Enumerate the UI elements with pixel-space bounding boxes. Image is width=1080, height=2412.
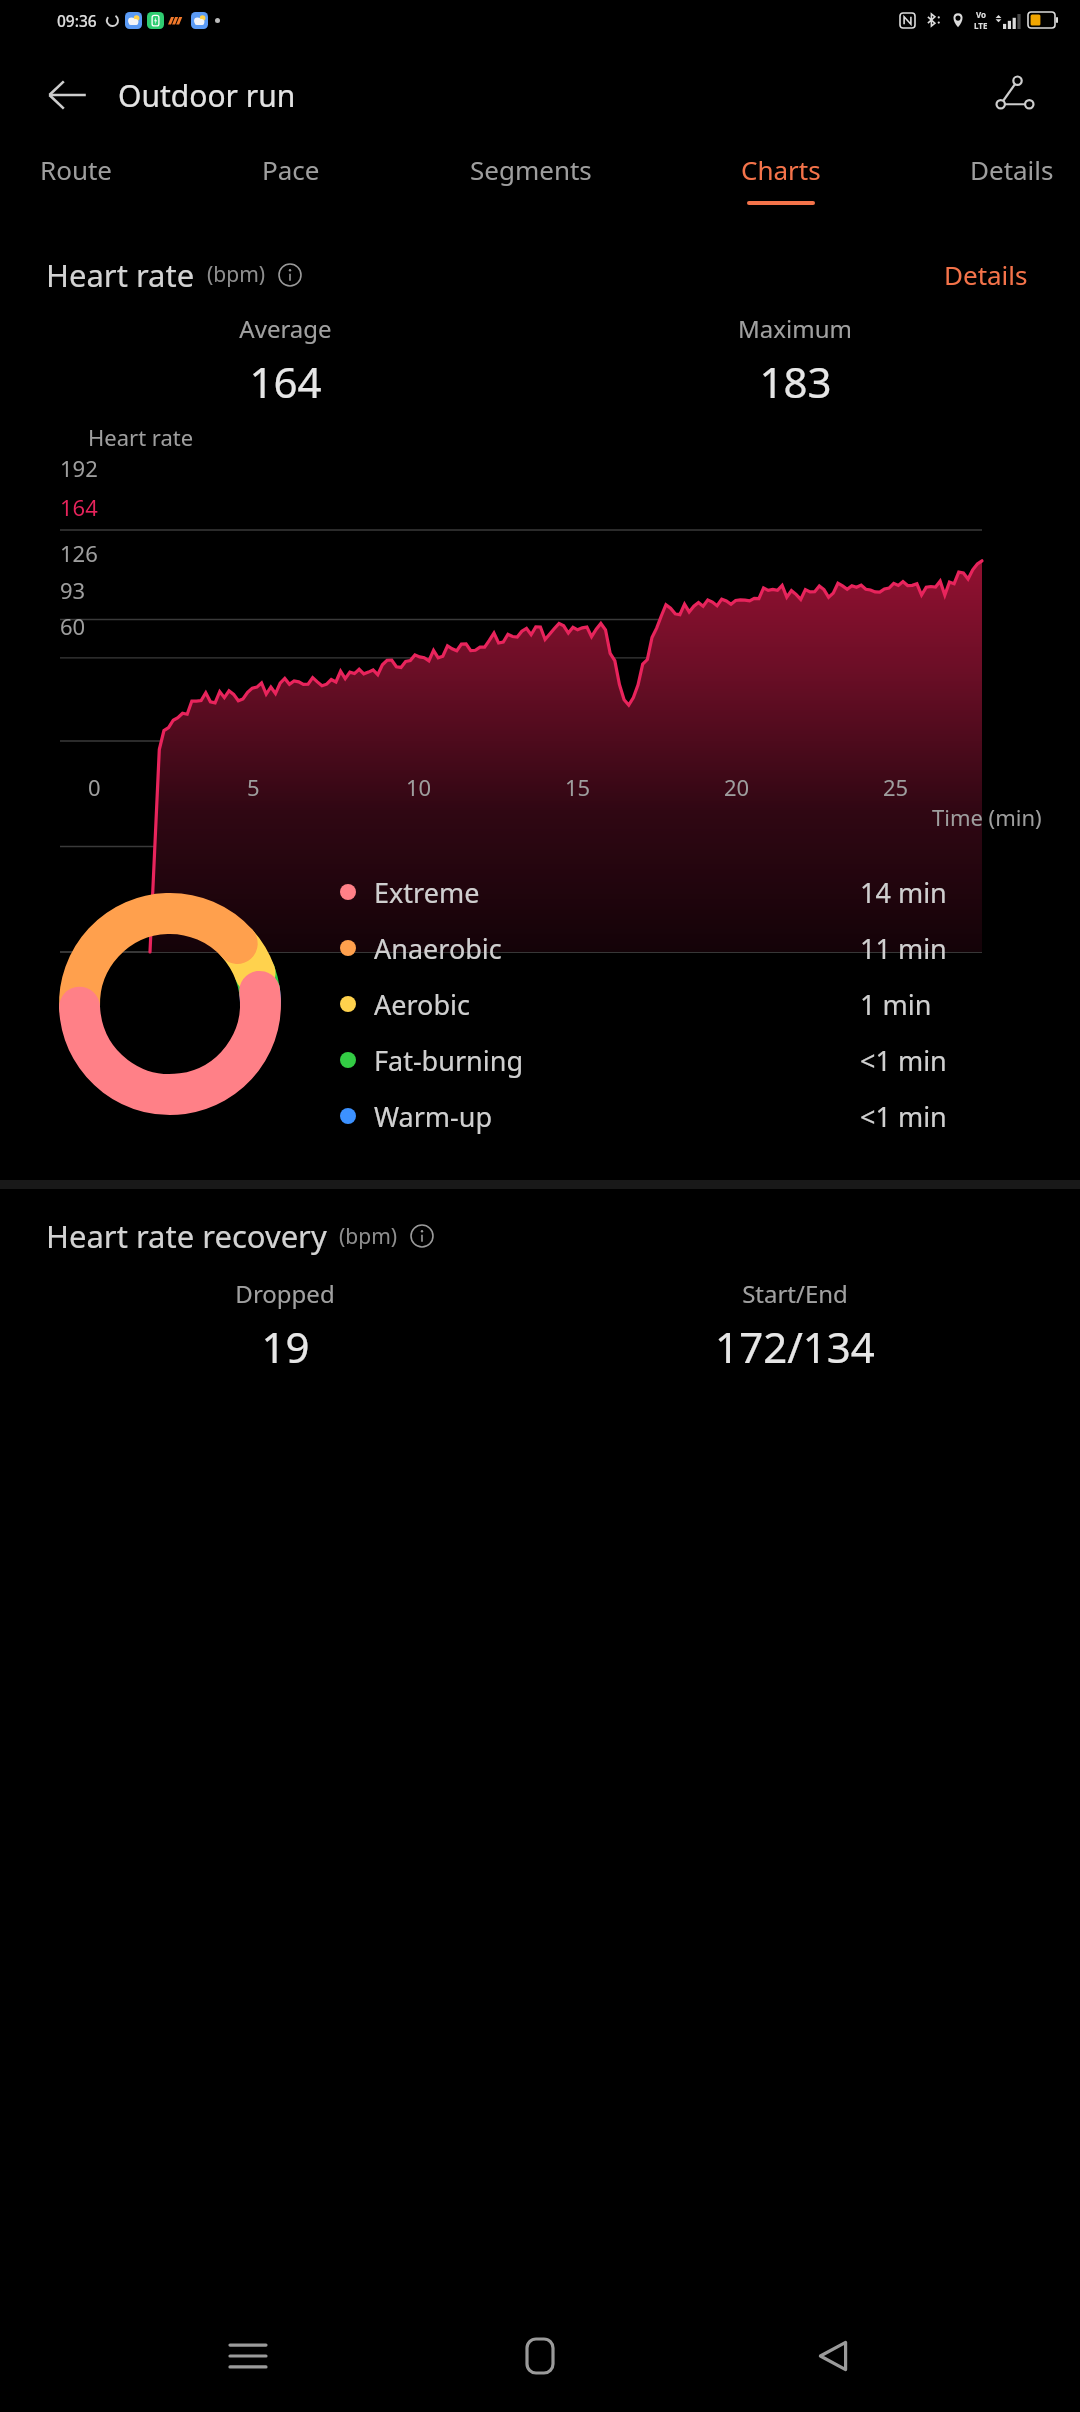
staticText: Maximum xyxy=(738,312,852,345)
staticText: 15 xyxy=(565,772,591,802)
button[interactable]: Details xyxy=(966,150,1058,207)
button[interactable]: Aerobic xyxy=(340,976,1040,1032)
staticText: (bpm) xyxy=(207,260,266,289)
button[interactable]: Share xyxy=(980,60,1050,130)
staticText: Time (min) xyxy=(932,802,1042,832)
staticText: 20 xyxy=(724,772,750,802)
staticText: Route xyxy=(40,152,113,187)
button[interactable]: Info xyxy=(276,261,304,289)
staticText: Heart rate recovery xyxy=(46,1215,327,1257)
staticText: 0 xyxy=(88,772,101,802)
staticText: LTE xyxy=(974,20,988,31)
button[interactable]: Back xyxy=(36,64,98,126)
staticText: 25 xyxy=(883,772,909,802)
staticText: Anaerobic xyxy=(374,930,502,967)
staticText: Start/End xyxy=(742,1277,848,1310)
staticText: <1 min xyxy=(860,1098,947,1135)
staticText: 192 xyxy=(60,453,98,483)
staticText: Vo xyxy=(976,9,987,20)
staticText: Aerobic xyxy=(374,986,470,1023)
staticText: 93 xyxy=(60,575,86,605)
button[interactable]: Extreme xyxy=(340,864,1040,920)
staticText: Outdoor run xyxy=(118,75,296,116)
staticText: Segments xyxy=(470,152,592,187)
button[interactable]: Anaerobic xyxy=(340,920,1040,976)
button[interactable]: Home xyxy=(495,2311,585,2401)
button[interactable]: Charts xyxy=(737,150,825,207)
staticText: 14 min xyxy=(860,874,947,911)
staticText: <1 min xyxy=(860,1042,947,1079)
staticText: Details xyxy=(944,257,1028,292)
staticText: (bpm) xyxy=(339,1222,398,1251)
button[interactable]: Info xyxy=(408,1222,436,1250)
staticText: 19 xyxy=(261,1318,310,1375)
staticText: Extreme xyxy=(374,874,480,911)
staticText: Details xyxy=(970,152,1054,187)
staticText: 1 min xyxy=(860,986,932,1023)
button[interactable]: Warm-up xyxy=(340,1088,1040,1144)
button[interactable]: Route xyxy=(36,150,117,207)
staticText: Warm-up xyxy=(374,1098,493,1135)
button[interactable]: Details xyxy=(938,251,1034,298)
button[interactable]: Recents xyxy=(203,2311,293,2401)
staticText: Charts xyxy=(741,152,821,187)
staticText: 10 xyxy=(406,772,432,802)
staticText: Pace xyxy=(262,152,320,187)
staticText: 5 xyxy=(247,772,260,802)
button[interactable]: Pace xyxy=(258,150,324,207)
staticText: 164 xyxy=(60,492,98,522)
staticText: 60 xyxy=(60,611,86,641)
staticText: Fat-burning xyxy=(374,1042,523,1079)
button[interactable]: Fat-burning xyxy=(340,1032,1040,1088)
button[interactable]: Back xyxy=(788,2311,878,2401)
staticText: Heart rate xyxy=(46,254,195,296)
staticText: Heart rate xyxy=(88,422,194,452)
staticText: 126 xyxy=(60,538,98,568)
staticText: 172/134 xyxy=(715,1318,875,1375)
staticText: Average xyxy=(239,312,332,345)
staticText: 11 min xyxy=(860,930,947,967)
button[interactable]: Segments xyxy=(466,150,596,207)
staticText: Dropped xyxy=(235,1277,335,1310)
staticText: 09:36 xyxy=(57,10,97,31)
staticText: 164 xyxy=(249,353,322,410)
staticText: 183 xyxy=(759,353,832,410)
